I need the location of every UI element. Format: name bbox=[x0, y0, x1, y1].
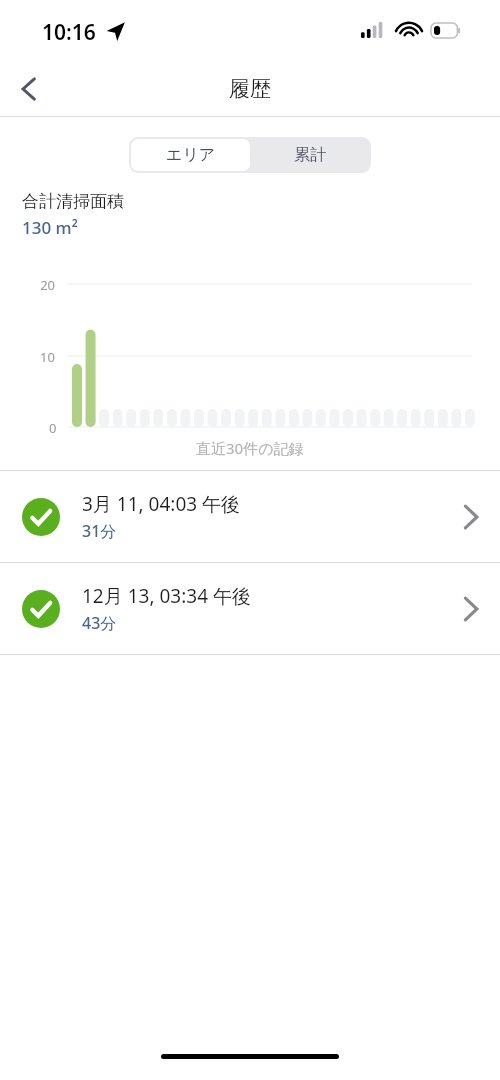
staticText: 130 m² bbox=[22, 216, 78, 239]
staticText: 43分 bbox=[82, 612, 117, 634]
button[interactable]: 3月 11, 04:03 午後 bbox=[0, 471, 500, 562]
staticText: エリア bbox=[166, 145, 216, 165]
staticText: 10 bbox=[40, 348, 55, 366]
staticText: 10:16 bbox=[42, 18, 96, 47]
staticText: 0 bbox=[49, 419, 57, 437]
staticText: 31分 bbox=[82, 520, 117, 542]
staticText: 直近30件の記録 bbox=[196, 438, 304, 458]
button[interactable]: Back bbox=[6, 62, 50, 116]
staticText: 履歴 bbox=[229, 76, 271, 102]
button[interactable]: エリア bbox=[131, 139, 250, 171]
staticText: 20 bbox=[40, 276, 55, 294]
staticText: 3月 11, 04:03 午後 bbox=[82, 491, 241, 517]
button[interactable]: 12月 13, 03:34 午後 bbox=[0, 563, 500, 654]
staticText: 合計清掃面積 bbox=[22, 191, 124, 212]
staticText: 累計 bbox=[294, 145, 326, 165]
staticText: 12月 13, 03:34 午後 bbox=[82, 583, 251, 609]
button[interactable]: 累計 bbox=[250, 139, 369, 171]
